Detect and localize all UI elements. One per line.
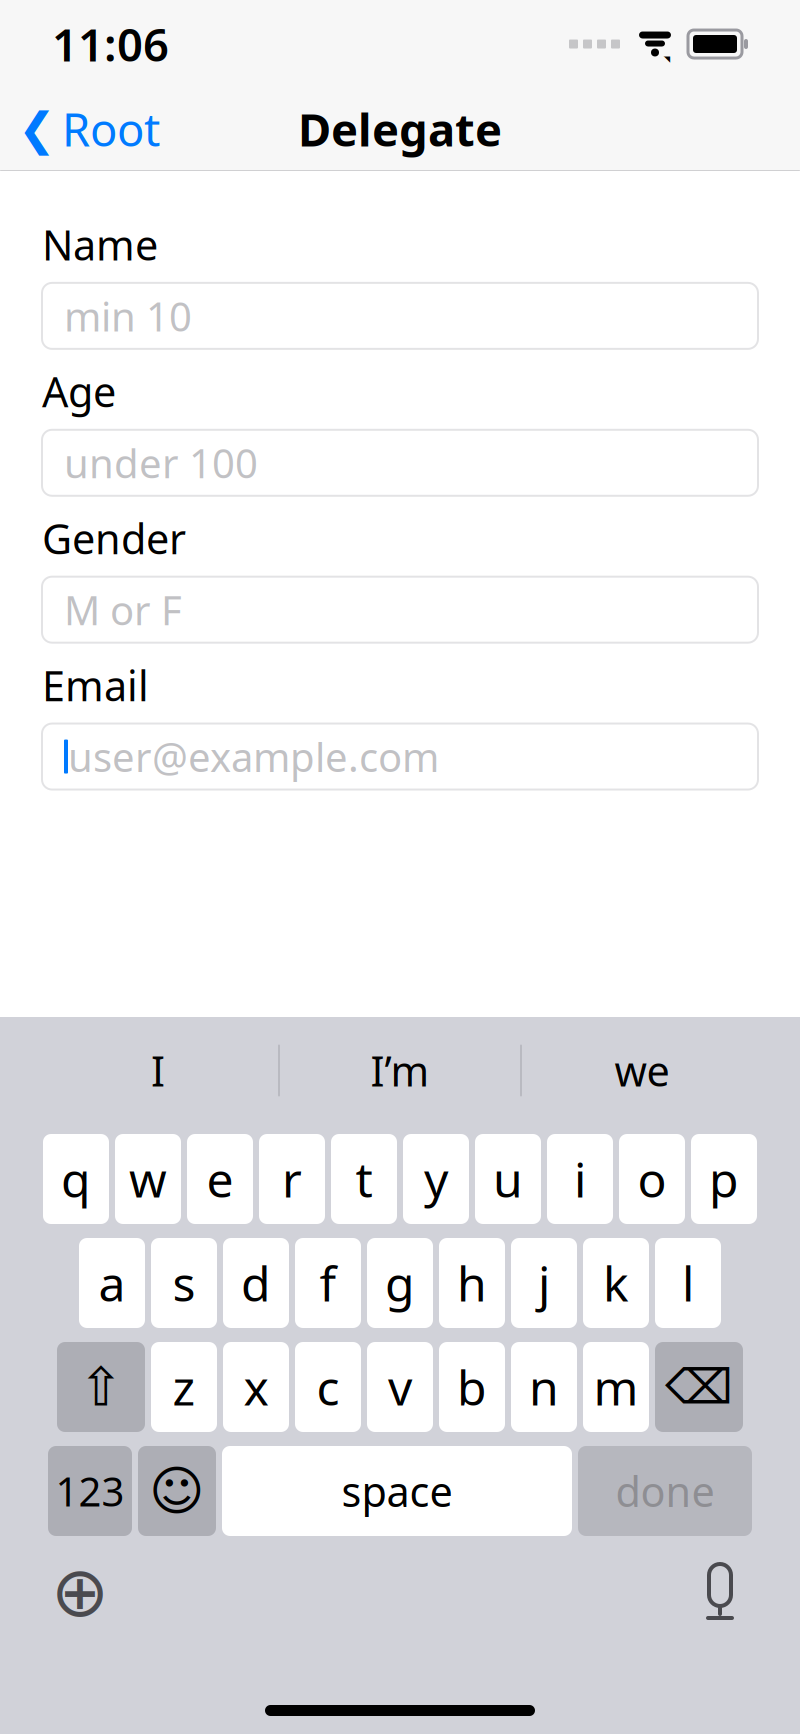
button[interactable]: n bbox=[511, 1342, 577, 1432]
staticText: Delegate bbox=[298, 99, 502, 159]
staticText: ❮ bbox=[18, 103, 56, 155]
staticText: m bbox=[593, 1355, 638, 1419]
staticText: p bbox=[709, 1147, 739, 1211]
button[interactable]: f bbox=[295, 1238, 361, 1328]
staticText: n bbox=[529, 1355, 559, 1419]
staticText: 123 bbox=[55, 1464, 124, 1517]
staticText: o bbox=[637, 1147, 666, 1211]
button[interactable]: 123 bbox=[48, 1446, 132, 1536]
staticText: done bbox=[615, 1464, 714, 1518]
button[interactable]: q bbox=[43, 1134, 109, 1224]
button[interactable]: y bbox=[403, 1134, 469, 1224]
button[interactable]: j bbox=[511, 1238, 577, 1328]
staticText: min 10 bbox=[64, 289, 192, 342]
staticText: user@example.com bbox=[68, 730, 439, 783]
staticText: ⊕ bbox=[51, 1553, 109, 1631]
staticText: Root bbox=[62, 99, 160, 159]
staticText: g bbox=[385, 1251, 415, 1315]
staticText: u bbox=[493, 1147, 523, 1211]
staticText: r bbox=[282, 1147, 302, 1211]
staticText: b bbox=[457, 1355, 487, 1419]
button[interactable]: space bbox=[222, 1446, 572, 1536]
button[interactable]: d bbox=[223, 1238, 289, 1328]
button[interactable]: t bbox=[331, 1134, 397, 1224]
staticText: Email bbox=[42, 658, 149, 713]
staticText: Name bbox=[42, 217, 158, 272]
button[interactable]: we bbox=[522, 1017, 762, 1124]
staticText: q bbox=[61, 1147, 91, 1211]
button[interactable]: Shift bbox=[57, 1342, 145, 1432]
staticText: ⌫ bbox=[665, 1360, 733, 1414]
button[interactable]: ❮ bbox=[0, 89, 178, 169]
staticText: I’m bbox=[370, 1043, 429, 1098]
button[interactable]: x bbox=[223, 1342, 289, 1432]
staticText: e bbox=[206, 1147, 233, 1211]
staticText: M or F bbox=[64, 583, 182, 636]
staticText: Gender bbox=[42, 511, 186, 566]
button[interactable]: v bbox=[367, 1342, 433, 1432]
staticText: we bbox=[614, 1043, 669, 1098]
staticText: x bbox=[243, 1355, 268, 1419]
staticText: space bbox=[341, 1464, 452, 1518]
staticText: d bbox=[241, 1251, 271, 1315]
staticText: l bbox=[682, 1251, 694, 1315]
staticText: y bbox=[424, 1147, 448, 1211]
staticText: under 100 bbox=[64, 436, 258, 489]
button[interactable]: p bbox=[691, 1134, 757, 1224]
staticText: j bbox=[538, 1251, 550, 1315]
staticText: Age bbox=[42, 364, 116, 419]
staticText: f bbox=[319, 1251, 336, 1315]
button[interactable]: h bbox=[439, 1238, 505, 1328]
staticText: i bbox=[574, 1147, 586, 1211]
staticText: c bbox=[316, 1355, 339, 1419]
button[interactable]: u bbox=[475, 1134, 541, 1224]
button[interactable]: w bbox=[115, 1134, 181, 1224]
staticText: ⇧ bbox=[78, 1357, 123, 1417]
button[interactable]: l bbox=[655, 1238, 721, 1328]
button[interactable]: o bbox=[619, 1134, 685, 1224]
staticText: k bbox=[603, 1251, 629, 1315]
button[interactable]: b bbox=[439, 1342, 505, 1432]
staticText: I bbox=[151, 1043, 165, 1098]
button[interactable]: k bbox=[583, 1238, 649, 1328]
staticText: z bbox=[172, 1355, 195, 1419]
button[interactable]: m bbox=[583, 1342, 649, 1432]
staticText: h bbox=[457, 1251, 487, 1315]
staticText: ◥ bbox=[639, 21, 670, 67]
staticText: a bbox=[98, 1251, 125, 1315]
button[interactable]: done bbox=[578, 1446, 752, 1536]
button[interactable]: Next keyboard bbox=[40, 1552, 120, 1632]
staticText: 11:06 bbox=[52, 14, 169, 74]
button[interactable]: r bbox=[259, 1134, 325, 1224]
staticText: v bbox=[388, 1355, 412, 1419]
button[interactable]: I bbox=[38, 1017, 278, 1124]
button[interactable]: I’m bbox=[280, 1017, 520, 1124]
staticText: ☺ bbox=[149, 1461, 205, 1521]
button[interactable]: g bbox=[367, 1238, 433, 1328]
button[interactable]: Delete bbox=[655, 1342, 743, 1432]
staticText: w bbox=[129, 1147, 167, 1211]
button[interactable]: c bbox=[295, 1342, 361, 1432]
button[interactable]: s bbox=[151, 1238, 217, 1328]
button[interactable]: z bbox=[151, 1342, 217, 1432]
button[interactable]: Emoji bbox=[138, 1446, 216, 1536]
button[interactable]: a bbox=[79, 1238, 145, 1328]
staticText: s bbox=[172, 1251, 195, 1315]
button[interactable]: i bbox=[547, 1134, 613, 1224]
button[interactable]: Dictate bbox=[680, 1552, 760, 1632]
staticText: t bbox=[355, 1147, 372, 1211]
button[interactable]: e bbox=[187, 1134, 253, 1224]
